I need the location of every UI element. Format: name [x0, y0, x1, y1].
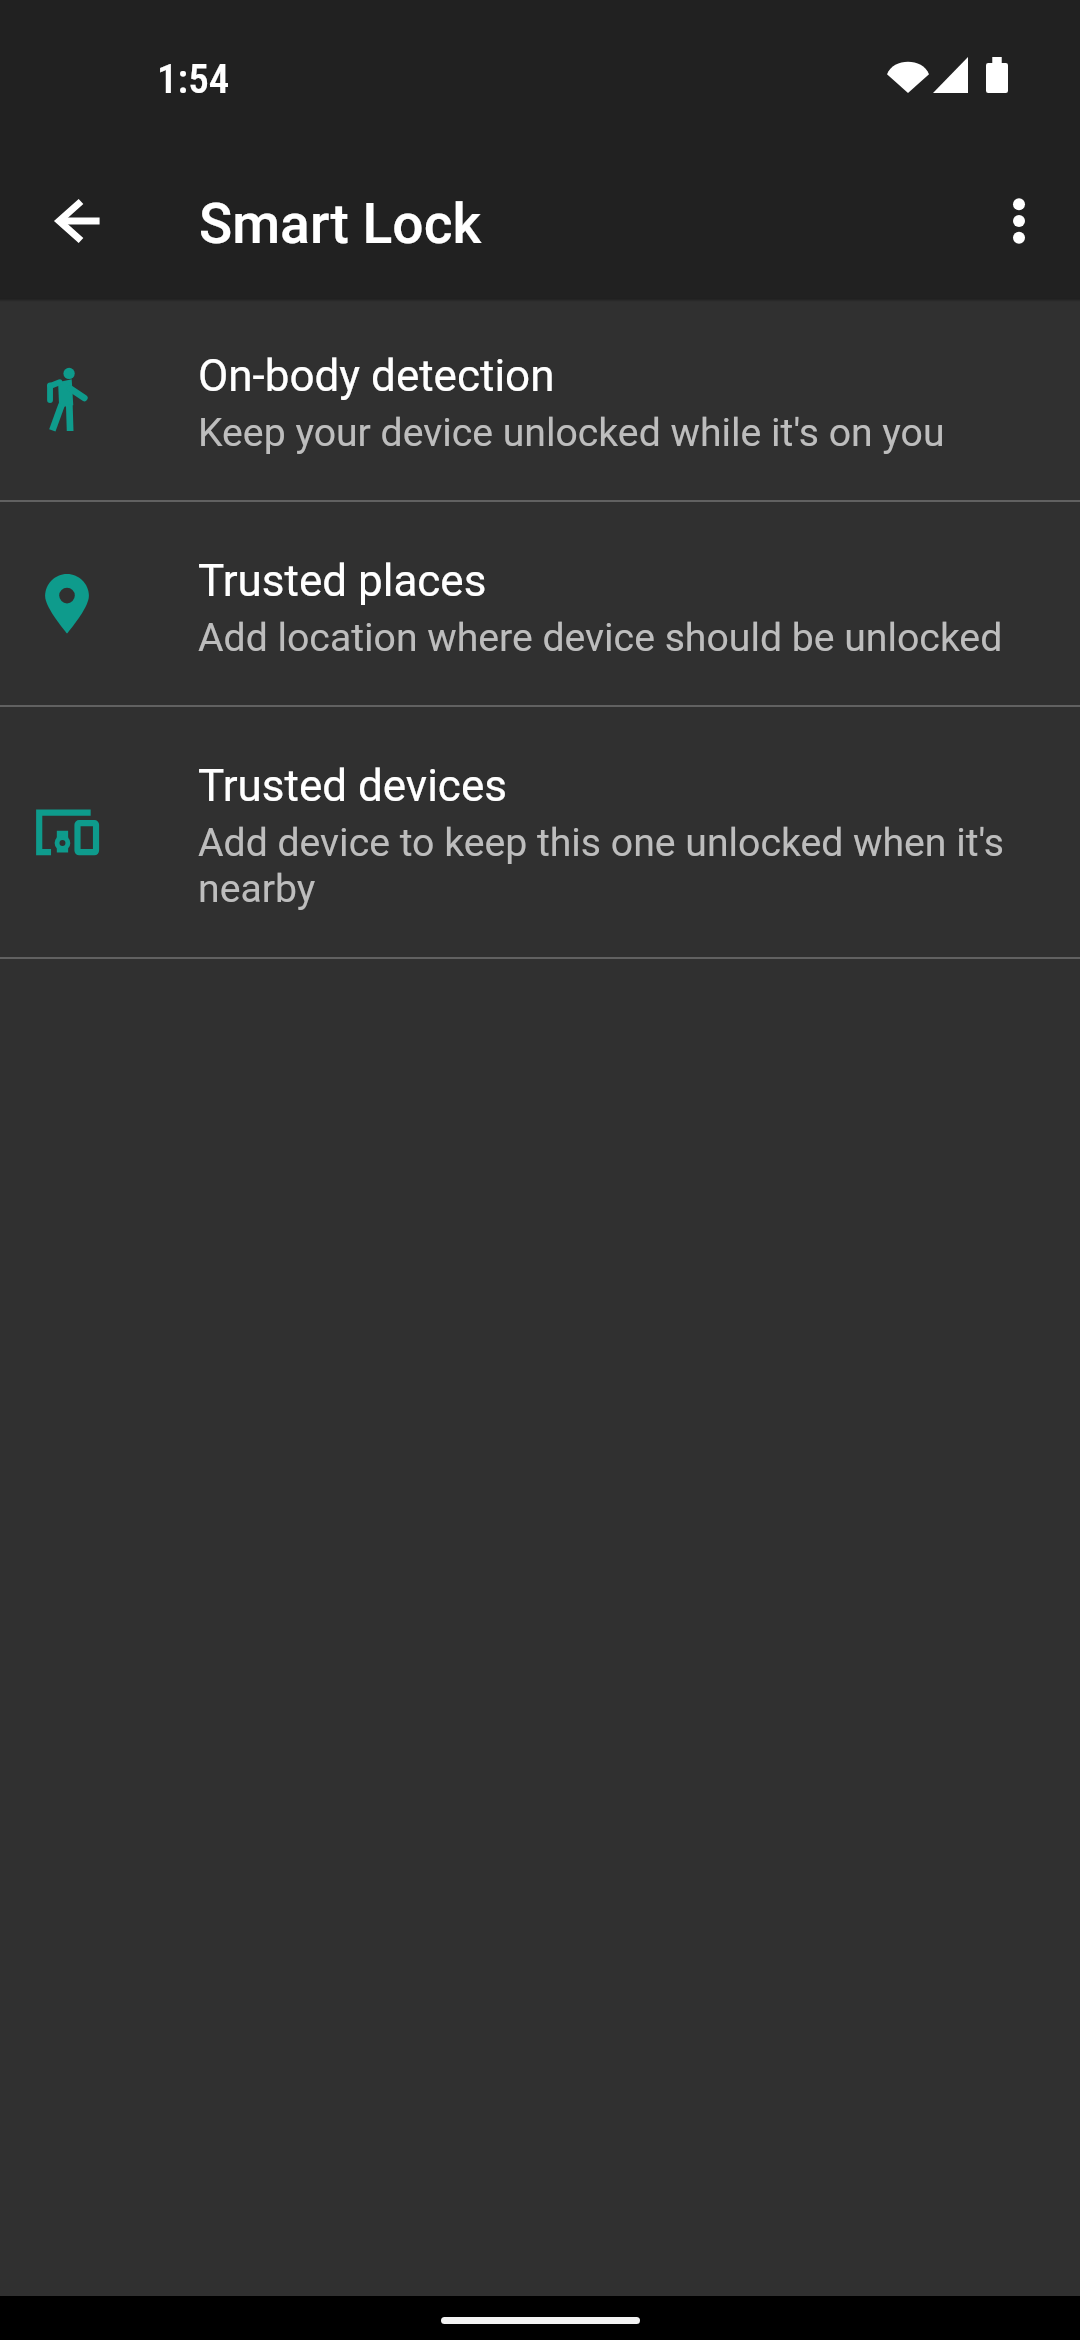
staticText: Add device to keep this one unlocked whe…	[198, 820, 1022, 912]
staticText: Add location where device should be unlo…	[198, 615, 1003, 661]
staticText: Trusted places	[198, 555, 487, 607]
staticText: Trusted devices	[198, 760, 507, 812]
staticText: 1:54	[157, 55, 230, 103]
button[interactable]: Back	[30, 173, 126, 269]
button[interactable]: Trusted places	[0, 502, 1080, 705]
button[interactable]: Trusted devices	[0, 707, 1080, 957]
staticText: Keep your device unlocked while it's on …	[198, 410, 945, 456]
button[interactable]: On-body detection	[0, 298, 1080, 500]
other: Home	[441, 2317, 640, 2324]
button[interactable]: More options	[971, 173, 1067, 269]
staticText: Smart Lock	[199, 192, 482, 256]
staticText: On-body detection	[198, 350, 555, 402]
